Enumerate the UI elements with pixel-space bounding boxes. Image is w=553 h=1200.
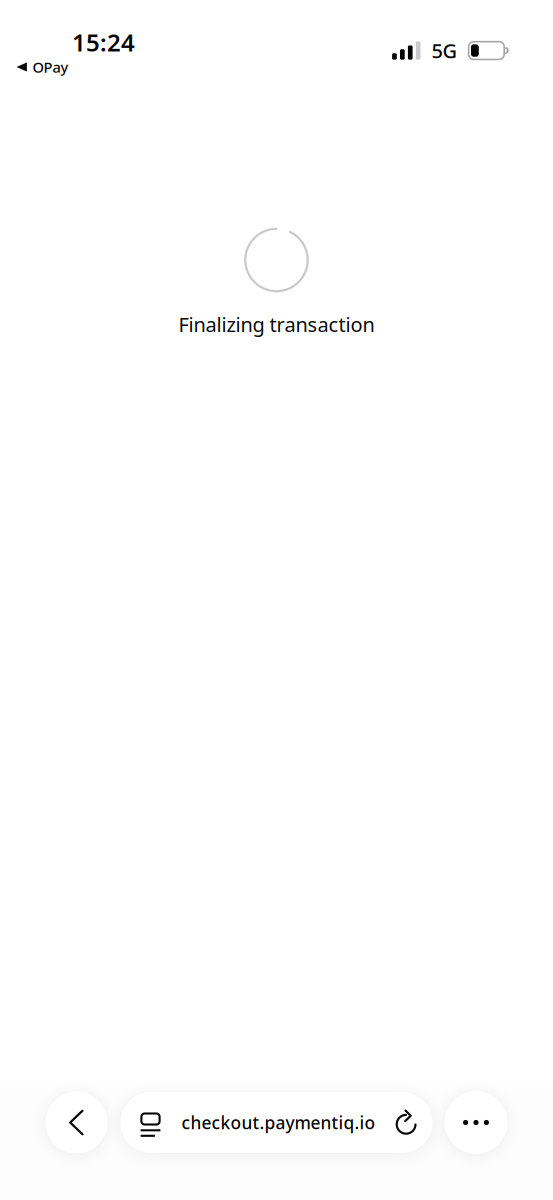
staticText: Finalizing transaction — [178, 311, 374, 338]
button[interactable]: OPay — [16, 57, 68, 77]
button[interactable]: Back — [45, 1091, 107, 1153]
button[interactable]: checkout.paymentiq.io — [120, 1092, 432, 1153]
staticText: 5G — [432, 37, 458, 64]
button[interactable]: More — [444, 1091, 507, 1154]
staticText: OPay — [32, 57, 68, 77]
staticText: checkout.paymentiq.io — [181, 1111, 375, 1134]
staticText: 15:24 — [72, 26, 135, 58]
